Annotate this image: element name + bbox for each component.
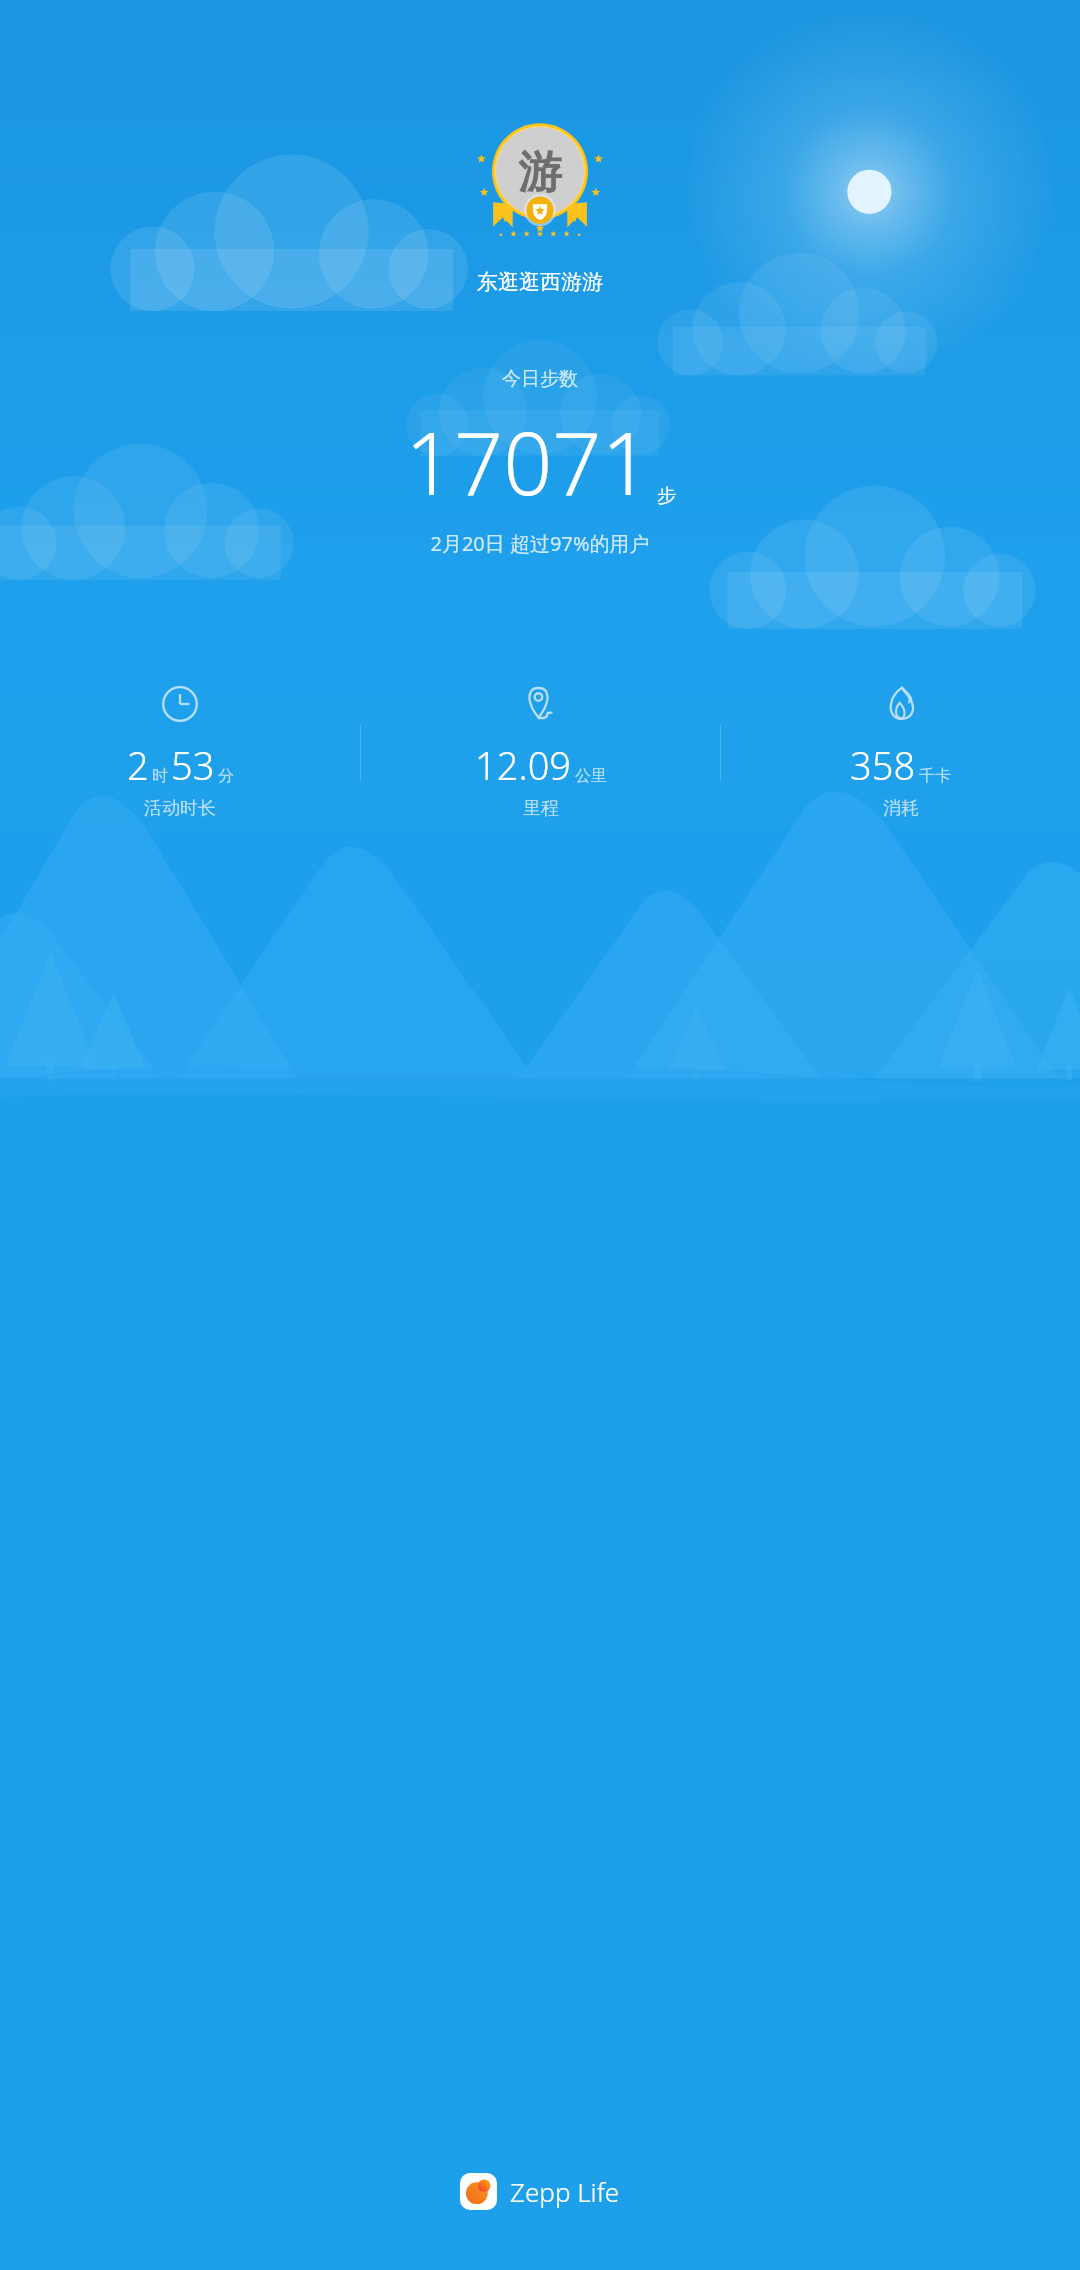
- staticText: 游: [518, 145, 562, 200]
- button[interactable]: 里程: [361, 683, 720, 820]
- staticText: 活动时长: [144, 797, 216, 820]
- staticText: 2: [127, 739, 149, 791]
- button[interactable]: 消耗: [721, 683, 1080, 820]
- staticText: 53: [171, 739, 215, 791]
- other: 里程: [520, 683, 562, 725]
- staticText: 公里: [575, 766, 607, 786]
- staticText: Zepp Life: [510, 2174, 620, 2209]
- staticText: 今日步数: [502, 367, 578, 391]
- staticText: 358: [850, 739, 916, 791]
- button[interactable]: 东逛逛西游游: [477, 269, 603, 295]
- staticText: 分: [218, 766, 234, 786]
- other: 活动时长: [159, 683, 201, 725]
- staticText: 12.09: [475, 739, 572, 791]
- other: 消耗: [880, 683, 922, 725]
- staticText: 步: [657, 484, 676, 508]
- staticText: 时: [152, 766, 168, 786]
- staticText: 消耗: [883, 797, 919, 820]
- button[interactable]: 成就徽章: [470, 123, 610, 263]
- button[interactable]: 活动时长: [0, 683, 360, 820]
- staticText: 2月20日 超过97%的用户: [430, 530, 650, 557]
- staticText: 里程: [523, 797, 559, 820]
- staticText: 千卡: [919, 766, 951, 786]
- button[interactable]: Zepp Life: [460, 2173, 620, 2210]
- staticText: 17071: [405, 403, 651, 520]
